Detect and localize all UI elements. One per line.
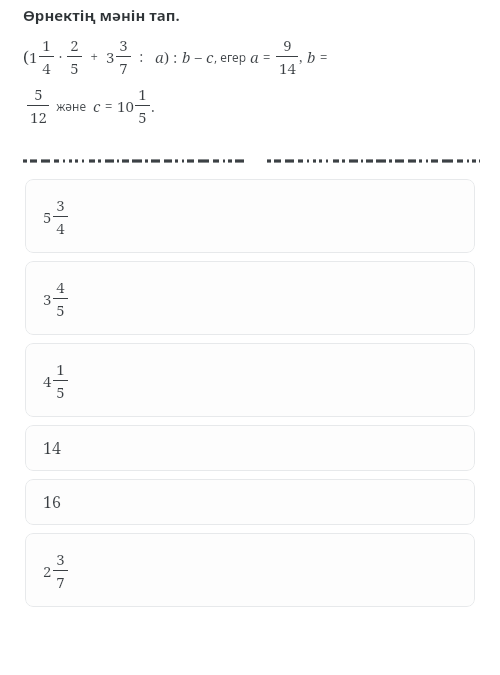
staticText: 7 <box>119 58 128 78</box>
button[interactable]: 2 <box>25 533 475 607</box>
staticText: Өрнектің мәнін тап. <box>23 5 180 25</box>
staticText: , <box>299 47 307 66</box>
staticText: ) : <box>164 47 182 67</box>
staticText: + <box>83 47 106 66</box>
staticText: және <box>50 98 93 114</box>
staticText: , егер <box>214 49 250 65</box>
staticText: 14 <box>279 58 296 78</box>
staticText: c <box>206 47 214 67</box>
staticText: 2 <box>70 35 79 55</box>
button[interactable]: 16 <box>25 479 475 525</box>
staticText: · <box>55 47 66 66</box>
staticText: 1 <box>138 84 147 104</box>
staticText: 1 <box>56 359 65 379</box>
staticText: a <box>151 47 164 67</box>
staticText: 1 <box>29 47 38 67</box>
button[interactable]: 3 <box>25 261 475 335</box>
staticText: 16 <box>43 491 61 513</box>
button[interactable]: 14 <box>25 425 475 471</box>
staticText: 5 <box>56 382 65 402</box>
staticText: 9 <box>283 35 292 55</box>
staticText: : <box>132 47 151 66</box>
button[interactable]: 5 <box>25 179 475 253</box>
staticText: ( <box>23 45 29 68</box>
staticText: 4 <box>43 371 52 391</box>
staticText: 7 <box>56 572 65 592</box>
staticText: 4 <box>56 277 65 297</box>
staticText: – <box>191 47 206 66</box>
staticText: 3 <box>119 35 128 55</box>
staticText: 1 <box>42 35 51 55</box>
staticText: 3 <box>56 195 65 215</box>
staticText: = <box>101 96 117 115</box>
staticText: 14 <box>43 437 61 459</box>
staticText: a <box>250 47 259 67</box>
button[interactable]: 4 <box>25 343 475 417</box>
staticText: b <box>307 47 316 67</box>
staticText: 2 <box>43 561 52 581</box>
staticText: = <box>259 47 275 66</box>
staticText: 5 <box>56 300 65 320</box>
staticText: . <box>151 96 155 116</box>
staticText: 3 <box>56 549 65 569</box>
staticText: 5 <box>34 84 43 104</box>
staticText: 10 <box>117 96 134 116</box>
staticText: 3 <box>106 47 115 67</box>
staticText: 12 <box>30 107 47 127</box>
staticText: 4 <box>42 58 51 78</box>
staticText: 5 <box>70 58 79 78</box>
staticText: 3 <box>43 289 52 309</box>
staticText: b <box>182 47 191 67</box>
staticText: 5 <box>138 107 147 127</box>
staticText: 5 <box>43 207 52 227</box>
staticText: = <box>316 47 328 66</box>
staticText: c <box>93 96 101 116</box>
staticText: 4 <box>56 218 65 238</box>
